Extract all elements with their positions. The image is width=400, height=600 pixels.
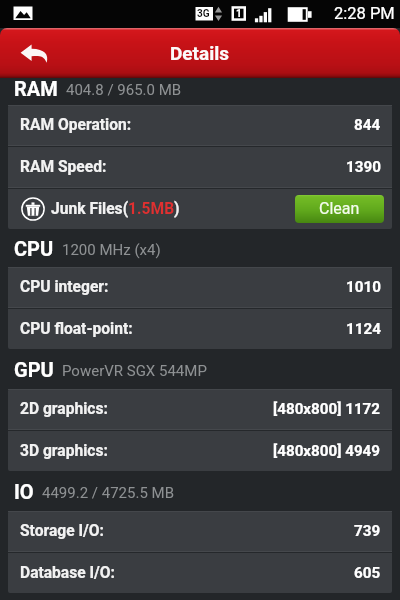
staticText: [480x800] 4949 — [273, 442, 381, 460]
staticText: 739 — [354, 522, 381, 540]
staticText: GPU — [14, 358, 54, 381]
staticText: 404.8 / 965.0 MB — [66, 81, 182, 99]
button[interactable]: RAM Speed: — [8, 147, 392, 187]
button[interactable]: Clean — [295, 195, 384, 223]
button[interactable]: CPU integer: — [8, 267, 392, 307]
button[interactable]: Back — [0, 28, 68, 78]
button[interactable]: Database I/O: — [8, 553, 392, 593]
staticText: CPU float-point: — [20, 320, 133, 338]
staticText: 1124 — [346, 320, 381, 338]
staticText: 3G — [197, 8, 210, 20]
button[interactable]: 3D graphics: — [8, 431, 392, 471]
staticText: [480x800] 1172 — [273, 400, 381, 418]
staticText: 1200 MHz (x4) — [62, 241, 161, 259]
staticText: 1 — [236, 8, 242, 20]
staticText: 844 — [354, 116, 381, 134]
staticText: RAM — [14, 77, 58, 100]
staticText: Details — [170, 42, 230, 64]
staticText: 605 — [354, 564, 381, 582]
staticText: CPU — [14, 237, 54, 260]
staticText: IO — [14, 480, 34, 503]
staticText: 2:28 PM — [334, 4, 395, 23]
button[interactable]: Junk Files(1.5MB) — [8, 189, 392, 229]
button[interactable]: Storage I/O: — [8, 511, 392, 551]
staticText: 1390 — [346, 158, 381, 176]
staticText: 3D graphics: — [20, 442, 108, 460]
staticText: RAM Speed: — [20, 158, 107, 176]
button[interactable]: 2D graphics: — [8, 389, 392, 429]
staticText: Clean — [319, 199, 360, 218]
staticText: Storage I/O: — [20, 522, 104, 540]
staticText: 2D graphics: — [20, 400, 108, 418]
staticText: 1010 — [346, 278, 381, 296]
staticText: RAM Operation: — [20, 116, 132, 134]
staticText: PowerVR SGX 544MP — [62, 362, 207, 380]
staticText: Junk Files(1.5MB) — [51, 200, 180, 218]
button[interactable]: RAM Operation: — [8, 105, 392, 145]
button[interactable]: CPU float-point: — [8, 309, 392, 349]
staticText: Database I/O: — [20, 564, 116, 582]
staticText: CPU integer: — [20, 278, 109, 296]
staticText: 4499.2 / 4725.5 MB — [42, 484, 175, 502]
